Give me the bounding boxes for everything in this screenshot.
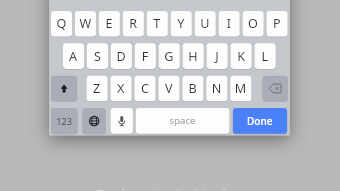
button[interactable]: On-screen keyboard bbox=[0, 0, 340, 191]
